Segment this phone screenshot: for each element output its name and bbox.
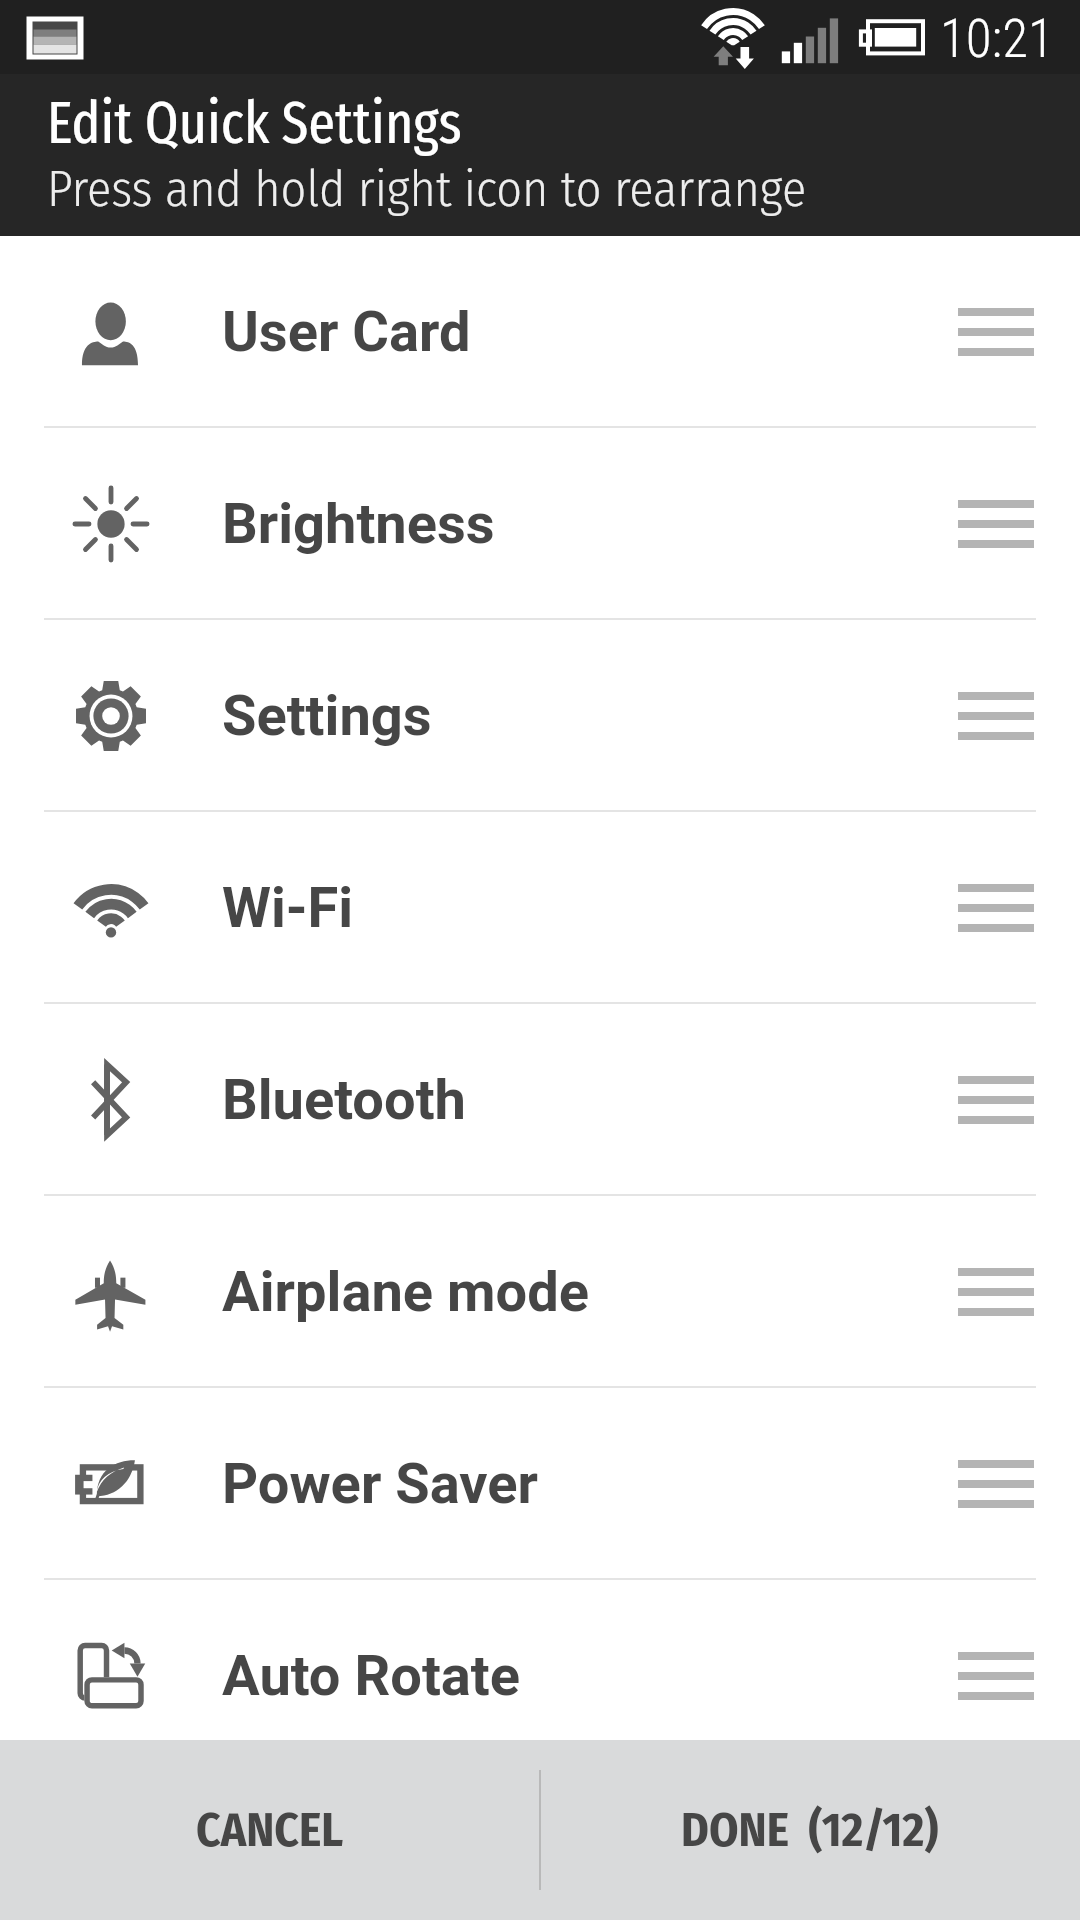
staticText: Brightness <box>222 491 495 557</box>
staticText: Wi-Fi <box>222 875 354 941</box>
staticText: Power Saver <box>222 1451 539 1517</box>
staticText: Settings <box>222 683 432 749</box>
staticText: Auto Rotate <box>222 1643 521 1709</box>
button[interactable]: Reorder Brightness <box>912 428 1080 620</box>
staticText: User Card <box>222 299 471 365</box>
button[interactable]: User Card <box>0 236 1080 428</box>
staticText: Press and hold right icon to rearrange <box>47 159 807 219</box>
button[interactable]: Wi-Fi <box>0 812 1080 1004</box>
button[interactable]: Bluetooth <box>0 1004 1080 1196</box>
button[interactable]: Reorder Power Saver <box>912 1388 1080 1580</box>
staticText: DONE (12/12) <box>681 1802 939 1858</box>
button[interactable]: Auto Rotate <box>0 1580 1080 1740</box>
button[interactable]: Brightness <box>0 428 1080 620</box>
staticText: Airplane mode <box>222 1259 589 1325</box>
button[interactable]: Power Saver <box>0 1388 1080 1580</box>
button[interactable]: Reorder Wi-Fi <box>912 812 1080 1004</box>
button[interactable]: Reorder Settings <box>912 620 1080 812</box>
button[interactable]: DONE (12/12) <box>540 1740 1080 1920</box>
button[interactable]: Reorder User Card <box>912 236 1080 428</box>
button[interactable]: Reorder Auto Rotate <box>912 1596 1080 1740</box>
staticText: 10:21 <box>940 8 1054 70</box>
staticText: Edit Quick Settings <box>47 88 462 159</box>
button[interactable]: Reorder Airplane mode <box>912 1196 1080 1388</box>
staticText: CANCEL <box>196 1802 344 1858</box>
button[interactable]: Settings <box>0 620 1080 812</box>
button[interactable]: CANCEL <box>0 1740 540 1920</box>
button[interactable]: Airplane mode <box>0 1196 1080 1388</box>
button[interactable]: Reorder Bluetooth <box>912 1004 1080 1196</box>
staticText: Bluetooth <box>222 1067 466 1133</box>
